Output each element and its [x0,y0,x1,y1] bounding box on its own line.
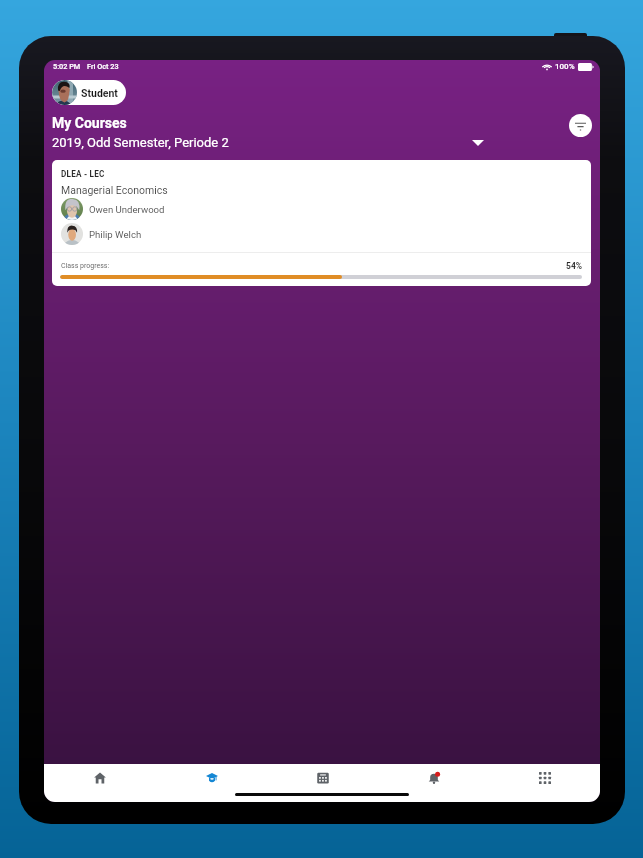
button[interactable]: Apps [489,764,600,792]
staticText: My Courses [52,115,127,131]
staticText: Philip Welch [89,229,142,240]
staticText: Owen Underwood [89,204,165,215]
button[interactable]: Student [52,80,126,105]
button[interactable]: Owen Underwood [61,198,591,220]
button[interactable]: Filter [569,114,592,137]
button[interactable]: Home [44,764,156,792]
staticText: 100% [555,62,575,71]
staticText: 54% [566,261,583,271]
button[interactable]: Select semester [464,132,492,154]
button[interactable]: Philip Welch [61,223,591,245]
staticText: Class progress: [61,262,110,270]
staticText: 5:02 PM [53,62,81,71]
button[interactable]: Calendar [267,764,378,792]
staticText: Student [81,87,118,99]
staticText: Fri Oct 23 [87,62,119,71]
button[interactable]: DLEA - LEC [52,160,591,286]
staticText: DLEA - LEC [61,169,105,179]
staticText: Managerial Economics [61,184,168,196]
staticText: 2019, Odd Semester, Periode 2 [52,135,229,150]
button[interactable]: Notifications [378,764,489,792]
button[interactable]: Courses [156,764,267,792]
